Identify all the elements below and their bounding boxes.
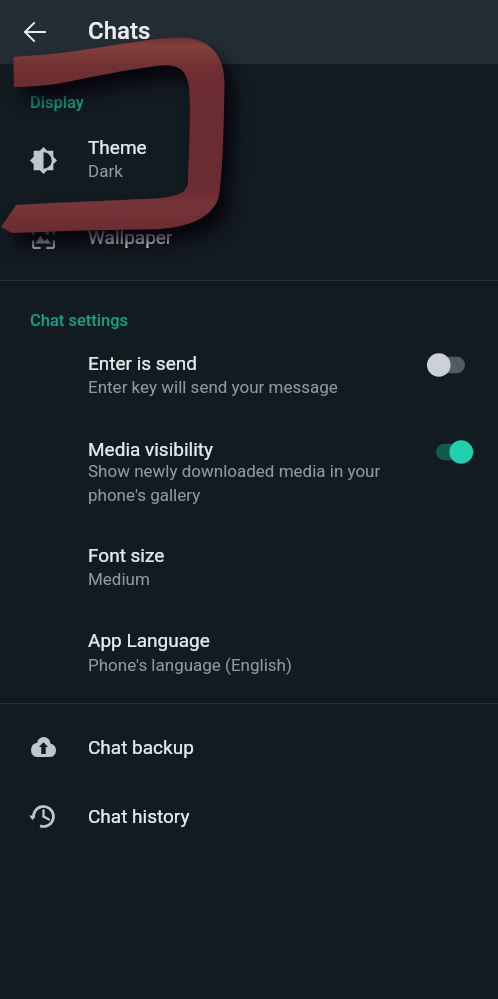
button[interactable]: Back <box>12 9 58 55</box>
button[interactable] <box>0 716 498 778</box>
staticText: Medium <box>88 569 150 589</box>
staticText: Enter key will send your message <box>88 377 338 397</box>
button[interactable] <box>0 423 498 520</box>
staticText: Show newly downloaded media in your phon… <box>88 461 381 505</box>
button[interactable] <box>0 336 498 413</box>
button[interactable] <box>0 610 498 687</box>
button[interactable] <box>0 121 498 198</box>
staticText: Wallpaper <box>88 226 173 248</box>
staticText: Display <box>30 93 84 112</box>
staticText: App Language <box>88 629 210 651</box>
staticText: Media visibility <box>88 438 214 460</box>
staticText: Enter is send <box>88 352 197 374</box>
button[interactable]: On <box>427 436 473 468</box>
staticText: Chat history <box>88 805 190 827</box>
button[interactable]: Off <box>427 349 473 381</box>
button[interactable] <box>0 206 498 268</box>
staticText: Chats <box>88 17 151 45</box>
staticText: Chat backup <box>88 736 194 758</box>
staticText: Theme <box>88 136 147 158</box>
staticText: Dark <box>88 161 123 181</box>
button[interactable] <box>0 524 498 601</box>
staticText: Chat settings <box>30 311 128 330</box>
button[interactable] <box>0 785 498 847</box>
staticText: Phone's language (English) <box>88 655 292 675</box>
staticText: Font size <box>88 544 165 566</box>
